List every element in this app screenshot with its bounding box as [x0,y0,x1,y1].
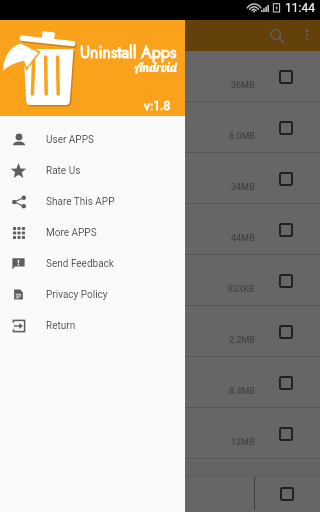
button[interactable]: Calendar [0,102,320,152]
staticText: Camera [54,171,96,185]
staticText: Share This APP [46,196,115,208]
button[interactable]: Drive [0,357,320,407]
staticText: 6.0MB [229,131,255,142]
staticText: More APPS [46,227,97,239]
staticText: v:1.8 [144,96,171,115]
button[interactable] [0,477,320,512]
button[interactable]: Rate Us [0,155,185,186]
button[interactable]: Search [261,20,292,51]
button[interactable]: More options [292,20,320,49]
button[interactable]: Chrome [0,204,320,254]
staticText: 11:44 [285,1,315,15]
button[interactable]: Calculator [0,51,320,101]
staticText: 2.2MB [229,335,255,346]
button[interactable]: Return [0,310,185,341]
staticText: 34MB [231,182,255,193]
staticText: Chrome [54,222,97,236]
staticText: Rate Us [46,165,81,177]
staticText: Calculator [54,69,109,83]
button[interactable]: Privacy Policy [0,279,185,310]
button[interactable]: More APPS [0,217,185,248]
staticText: Contacts [54,324,103,338]
button[interactable]: Share This APP [0,186,185,217]
staticText: Privacy Policy [46,289,108,301]
staticText: Send Feedback [46,258,114,270]
button[interactable]: Gmail [0,408,320,458]
staticText: 833KB [228,284,255,295]
staticText: 12MB [231,437,255,448]
button[interactable]: Send Feedback [0,248,185,279]
button[interactable]: Contacts [0,306,320,356]
staticText: 36MB [231,80,255,91]
button[interactable]: User APPS [0,124,185,155]
staticText: User APPS [46,134,94,146]
button[interactable]: Clock [0,255,320,305]
staticText: Uninstall Apps [80,41,177,64]
staticText: 8.4MB [229,386,255,397]
staticText: 44MB [231,233,255,244]
staticText: Return [46,320,76,332]
staticText: Android [135,59,178,75]
button[interactable]: Camera [0,153,320,203]
